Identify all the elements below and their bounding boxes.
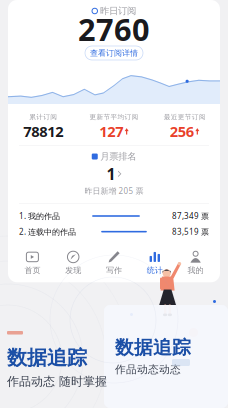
staticText: 更新节平均订阅 (89, 113, 138, 121)
staticText: 统计 (147, 265, 163, 275)
staticText: 查看订阅详情 (90, 48, 138, 58)
staticText: 2. 连载中的作品 (19, 226, 76, 237)
staticText: 月票排名 (100, 151, 136, 162)
staticText: 作品动态 随时掌握 (7, 374, 107, 389)
staticText: 累计订阅 (29, 113, 57, 121)
staticText: 写作 (106, 265, 122, 275)
button[interactable]: 我的 (175, 246, 216, 279)
staticText: 昨日订阅 (100, 5, 136, 17)
staticText: 1. 我的作品 (19, 211, 60, 221)
staticText: 1 (106, 163, 115, 184)
staticText: 发现 (65, 265, 81, 275)
staticText: 首页 (24, 265, 40, 275)
staticText: 256 (170, 122, 194, 141)
staticText: 我的 (188, 265, 204, 275)
button[interactable]: 月票排名 (8, 146, 220, 203)
staticText: 2760 (78, 9, 150, 49)
button[interactable]: 首页 (12, 246, 53, 279)
button[interactable]: 写作 (94, 246, 134, 279)
button[interactable]: 发现 (53, 246, 94, 279)
staticText: 数据追踪 (7, 345, 87, 370)
staticText: 数据追踪 (115, 336, 191, 359)
staticText: 87,349 票 (172, 211, 209, 221)
button[interactable]: 1. 我的作品 (19, 211, 209, 221)
staticText: 最近更节订阅 (164, 113, 206, 121)
staticText: 78812 (23, 122, 63, 141)
button[interactable]: 查看订阅详情 (85, 46, 143, 60)
staticText: 83,519 票 (172, 226, 209, 237)
staticText: 作品动态动态 (115, 363, 181, 376)
button[interactable]: 2. 连载中的作品 (19, 226, 209, 237)
staticText: 127 (99, 122, 123, 141)
staticText: 昨日新增 205 票 (84, 185, 143, 196)
button[interactable]: 统计 (134, 246, 175, 279)
